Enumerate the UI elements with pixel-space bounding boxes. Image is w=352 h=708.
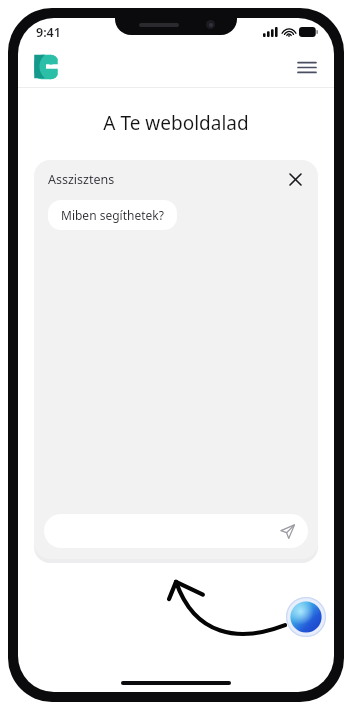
staticText: A Te weboldalad	[18, 110, 334, 136]
button[interactable]: Logo, home	[32, 53, 60, 81]
staticText: Asszisztens	[48, 171, 115, 188]
button[interactable]: Open assistant	[286, 597, 326, 637]
button[interactable]: Close assistant	[282, 166, 308, 192]
button[interactable]: Miben segíthetek?	[48, 200, 177, 230]
staticText: Miben segíthetek?	[61, 207, 164, 223]
button[interactable]: Send	[274, 518, 300, 544]
button[interactable]: Menu	[292, 52, 322, 82]
staticText: 9:41	[36, 24, 61, 41]
button[interactable]: Message input	[44, 514, 308, 548]
